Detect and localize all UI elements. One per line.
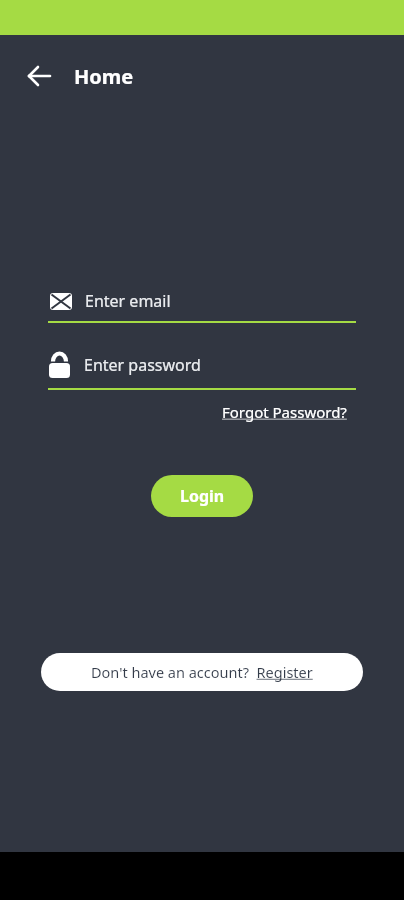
button[interactable]: Login — [151, 475, 253, 517]
staticText: Enter password — [84, 354, 201, 376]
staticText: Don't have an account? Register — [91, 662, 313, 682]
button[interactable]: Don't have an account? Register — [41, 653, 363, 691]
staticText: Enter email — [85, 290, 171, 312]
button[interactable] — [16, 52, 64, 100]
staticText: Home — [74, 63, 134, 90]
button[interactable]: Enter email — [48, 290, 356, 312]
staticText: Login — [180, 485, 225, 507]
button[interactable]: Forgot Password? — [222, 402, 347, 422]
button[interactable]: Enter password — [48, 352, 356, 378]
